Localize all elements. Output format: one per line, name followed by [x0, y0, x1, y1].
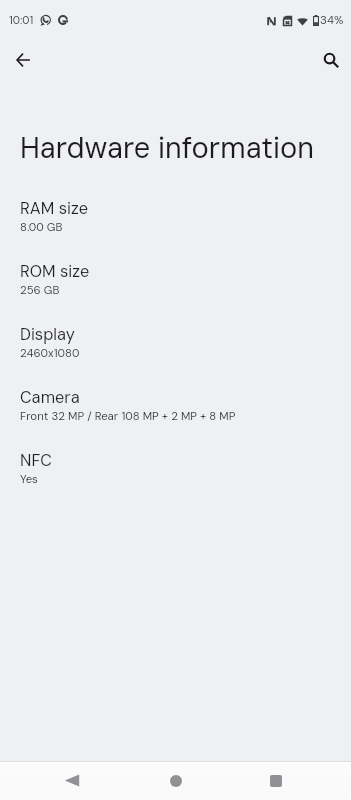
button[interactable]: ROM size: [0, 261, 351, 324]
staticText: Display: [20, 324, 75, 345]
button[interactable]: Display: [0, 324, 351, 387]
button[interactable]: Home: [128, 761, 224, 800]
button[interactable]: NFC: [0, 450, 351, 513]
staticText: Front 32 MP / Rear 108 MP + 2 MP + 8 MP: [20, 409, 236, 424]
staticText: Yes: [20, 472, 38, 487]
staticText: NFC: [20, 450, 52, 471]
staticText: Camera: [20, 387, 80, 408]
staticText: 2460x1080: [20, 346, 80, 361]
button[interactable]: RAM size: [0, 198, 351, 261]
staticText: RAM size: [20, 198, 89, 219]
staticText: 34%: [320, 13, 344, 28]
staticText: ROM size: [20, 261, 90, 282]
button[interactable]: Search: [315, 44, 347, 76]
button[interactable]: Camera: [0, 387, 351, 450]
staticText: 10:01: [9, 13, 34, 27]
button[interactable]: Back: [24, 761, 120, 800]
staticText: 8.00 GB: [20, 220, 63, 235]
staticText: Hardware information: [20, 129, 315, 167]
staticText: 256 GB: [20, 283, 60, 298]
button[interactable]: Back: [7, 44, 39, 76]
button[interactable]: Recents: [228, 761, 324, 800]
